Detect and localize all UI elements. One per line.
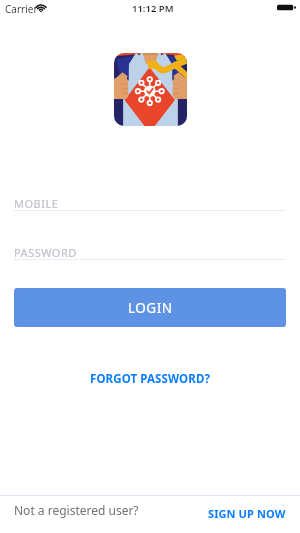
staticText: 11:12 PM	[132, 2, 174, 15]
staticText: Carrier	[5, 2, 38, 16]
staticText: LOGIN	[128, 299, 173, 317]
button[interactable]: PASSWORD	[14, 245, 77, 260]
button[interactable]: LOGIN	[14, 288, 286, 327]
staticText: FORGOT PASSWORD?	[90, 371, 211, 387]
button[interactable]: FORGOT PASSWORD?	[80, 365, 221, 393]
staticText: PASSWORD	[14, 245, 77, 260]
staticText: Not a registered user?	[14, 502, 139, 518]
button[interactable]: SIGN UP NOW	[208, 498, 286, 529]
staticText: SIGN UP NOW	[208, 506, 286, 521]
staticText: MOBILE	[14, 196, 59, 211]
button[interactable]: MOBILE	[14, 196, 59, 211]
